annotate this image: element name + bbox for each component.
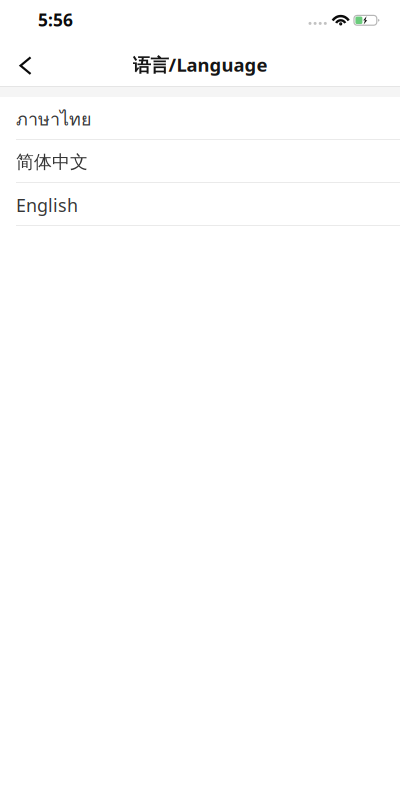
button[interactable]: Back xyxy=(0,38,48,86)
staticText: ภาษาไทย xyxy=(16,105,91,133)
staticText: 语言/Language xyxy=(132,52,267,77)
staticText: 5:56 xyxy=(38,8,73,32)
button[interactable]: English xyxy=(0,183,400,226)
button[interactable]: ภาษาไทย xyxy=(0,97,400,140)
button[interactable]: 简体中文 xyxy=(0,140,400,183)
staticText: 简体中文 xyxy=(16,151,88,173)
staticText: English xyxy=(16,193,78,217)
